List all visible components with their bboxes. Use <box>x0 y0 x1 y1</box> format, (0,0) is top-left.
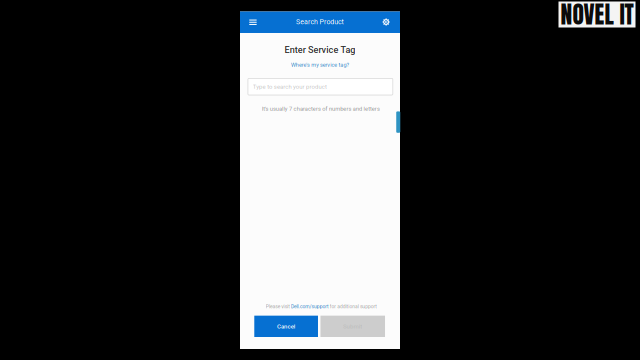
staticText: NOVEL IT <box>560 0 633 32</box>
